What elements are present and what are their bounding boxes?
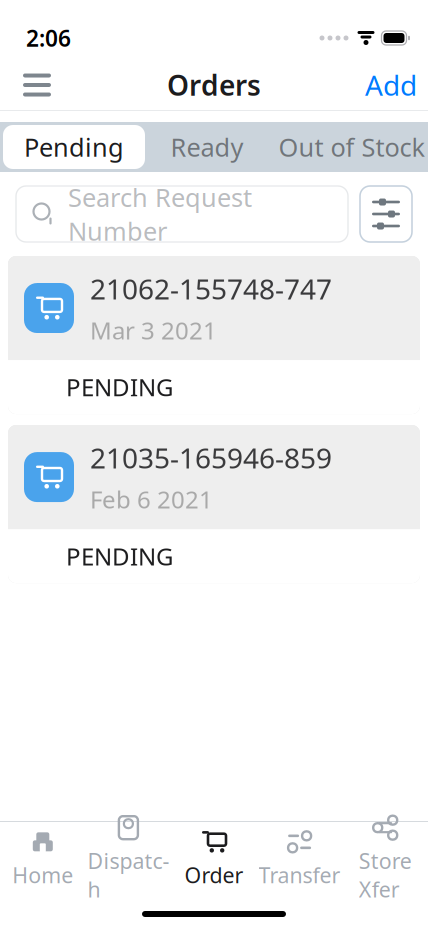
- staticText: Add: [365, 66, 417, 104]
- button[interactable]: Ready: [148, 122, 266, 172]
- button[interactable]: 21062-155748-747: [0, 256, 428, 414]
- staticText: Mar 3 2021: [90, 314, 217, 346]
- staticText: PENDING: [66, 371, 173, 403]
- staticText: 2:06: [26, 23, 71, 53]
- staticText: Order: [184, 861, 243, 889]
- button[interactable]: Menu: [8, 62, 66, 108]
- staticText: Transfer: [259, 861, 341, 889]
- staticText: Home: [12, 861, 73, 889]
- button[interactable]: Pending: [0, 125, 148, 169]
- button[interactable]: Dispatch: [86, 829, 171, 887]
- button[interactable]: Order: [171, 829, 257, 887]
- button[interactable]: Transfer: [257, 829, 342, 887]
- staticText: 21062-155748-747: [90, 270, 332, 307]
- button[interactable]: Home: [0, 829, 86, 887]
- staticText: Feb 6 2021: [90, 483, 213, 515]
- button[interactable]: 21035-165946-859: [0, 425, 428, 583]
- button[interactable]: Out of Stock: [266, 122, 428, 172]
- staticText: Search Request Number: [68, 180, 252, 248]
- staticText: Orders: [167, 66, 261, 104]
- staticText: PENDING: [66, 540, 173, 572]
- staticText: 21035-165946-859: [90, 439, 332, 476]
- button[interactable]: Add: [362, 62, 420, 108]
- staticText: Pending: [24, 130, 124, 164]
- staticText: Store Xfer: [359, 847, 412, 903]
- staticText: Ready: [170, 130, 243, 164]
- staticText: Dispatch: [87, 847, 169, 903]
- staticText: Out of Stock: [278, 130, 425, 164]
- button[interactable]: Store Xfer: [342, 829, 428, 887]
- button[interactable]: Filter: [360, 186, 412, 242]
